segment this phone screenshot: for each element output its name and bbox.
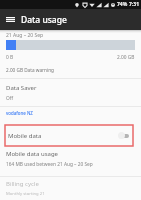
staticText: Billing cycle (6, 180, 39, 188)
staticText: Data usage (21, 14, 67, 26)
staticText: 164 MB used between 21 Aug – 20 Sep (6, 161, 93, 168)
button[interactable]: Data Saver (0, 79, 141, 106)
staticText: Mobile data (8, 132, 42, 140)
staticText: vodafone NZ (6, 110, 33, 116)
staticText: Off (6, 95, 14, 102)
button[interactable]: Mobile data (5, 125, 133, 146)
staticText: 2.00 GB (117, 54, 135, 61)
staticText: Monthly starting 21 (6, 191, 45, 196)
staticText: Data Saver (6, 84, 37, 92)
staticText: 0 B (6, 54, 14, 61)
staticText: 21 Aug – 20 Sep (6, 32, 44, 39)
staticText: 7:31 (129, 1, 139, 8)
button[interactable]: Billing cycle (0, 177, 141, 200)
staticText: Mobile data usage (6, 150, 58, 158)
button[interactable]: Mobile data usage (0, 146, 141, 176)
staticText: 2.00 GB Data warning (6, 67, 54, 73)
button[interactable]: Open navigation menu (0, 9, 21, 30)
staticText: 74% (117, 1, 128, 8)
